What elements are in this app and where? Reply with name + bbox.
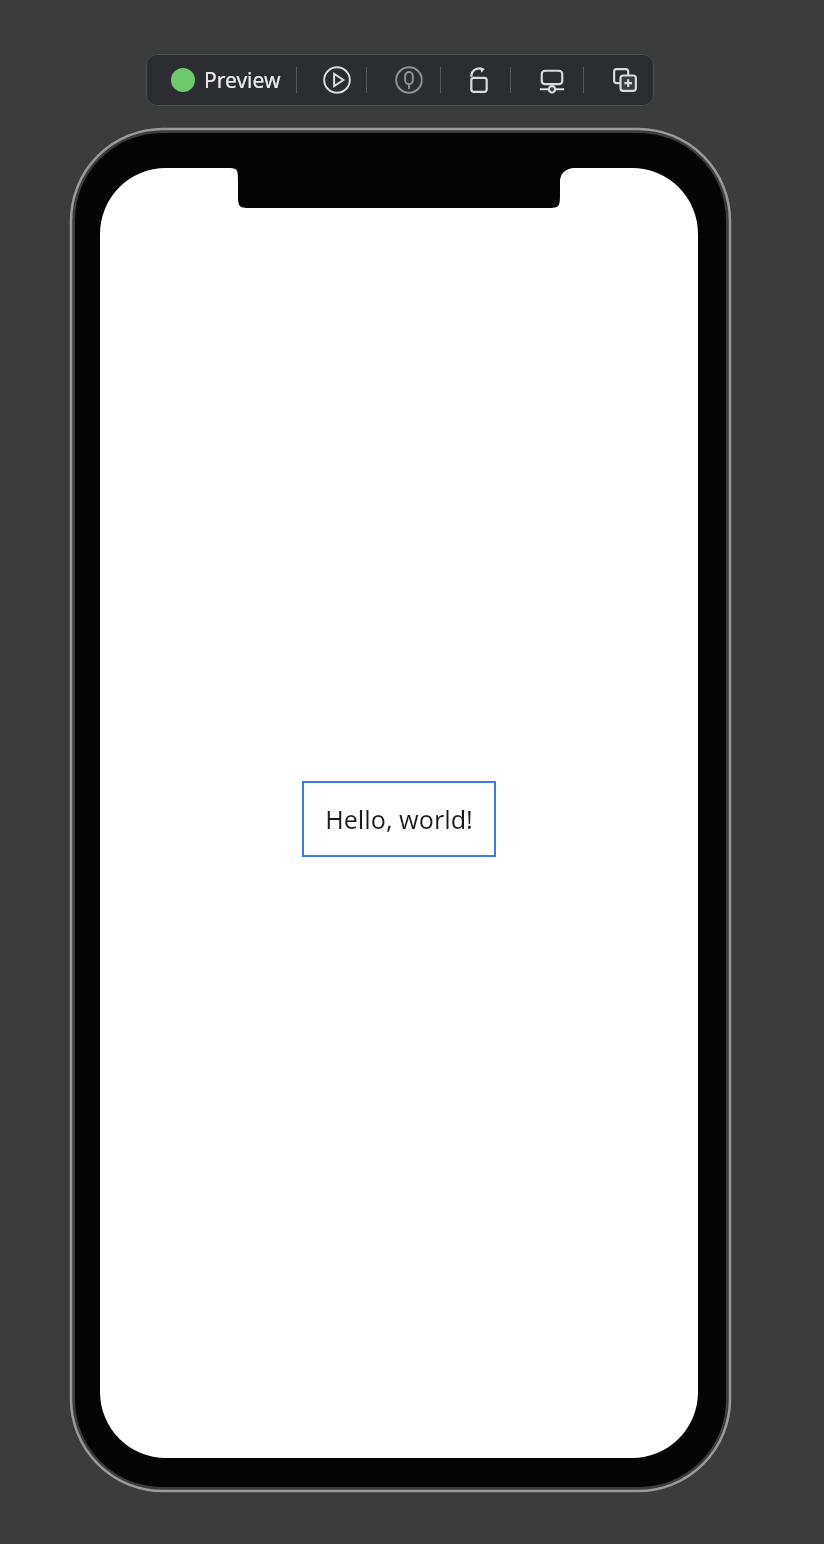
button[interactable]: Rerun <box>457 58 501 102</box>
button[interactable]: Preview <box>159 54 296 106</box>
button[interactable]: Hello, world! <box>302 781 496 857</box>
button[interactable]: Device settings <box>530 58 574 102</box>
button[interactable]: Run preview <box>315 58 359 102</box>
staticText: Hello, world! <box>325 802 473 836</box>
button[interactable]: Add configuration <box>603 58 647 102</box>
staticText: Preview <box>204 66 281 95</box>
button[interactable]: Inspect <box>387 58 431 102</box>
